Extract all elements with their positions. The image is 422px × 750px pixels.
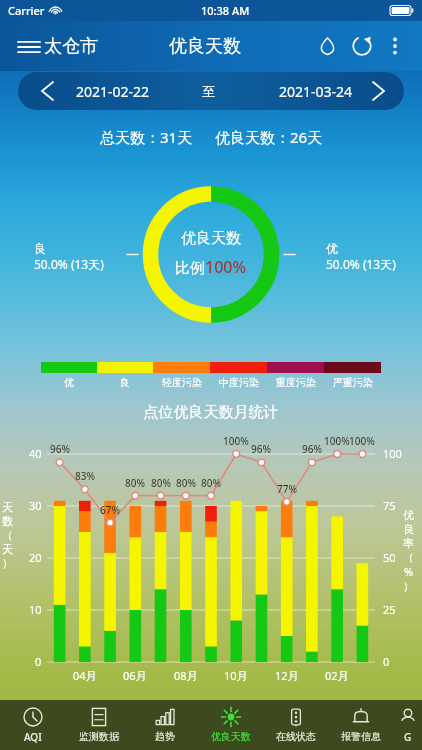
button[interactable]: 2021-03-24 <box>225 82 352 101</box>
staticText: 优良天数 <box>181 229 241 248</box>
staticText: 天 <box>2 542 13 556</box>
staticText: 0 <box>383 654 390 669</box>
staticText: 50 <box>383 550 396 565</box>
staticText: 0 <box>35 654 42 669</box>
staticText: 优良天数 <box>169 35 241 58</box>
staticText: ） <box>403 579 414 593</box>
staticText: （ <box>2 528 13 542</box>
staticText: 优 <box>64 376 74 389</box>
staticText: 80% <box>201 476 221 490</box>
staticText: 报警信息 <box>341 730 381 743</box>
button[interactable]: Next range <box>352 72 404 110</box>
staticText: 80% <box>151 476 171 490</box>
staticText: 优良天数：26天 <box>215 127 323 147</box>
button[interactable]: 在线状态 <box>263 700 328 750</box>
staticText: 总天数：31天 <box>100 127 193 147</box>
button[interactable]: Refresh <box>344 28 380 64</box>
staticText: 重度污染 <box>276 376 316 389</box>
staticText: 12月 <box>275 668 299 683</box>
staticText: 50.0% (13天) <box>326 256 396 272</box>
staticText: 96% <box>50 442 70 456</box>
staticText: 100 <box>383 446 402 461</box>
staticText: 10月 <box>224 668 248 683</box>
staticText: 监测数据 <box>79 730 119 743</box>
staticText: 在线状态 <box>276 730 316 743</box>
staticText: 77% <box>277 482 297 496</box>
staticText: 100% <box>223 434 249 448</box>
staticText: 96% <box>302 442 322 456</box>
staticText: 20 <box>29 550 42 565</box>
staticText: 优良天数 <box>211 730 251 743</box>
button[interactable]: G <box>393 700 422 750</box>
staticText: 10 <box>29 602 42 617</box>
button[interactable]: Previous range <box>18 72 76 110</box>
staticText: 75 <box>383 498 396 513</box>
staticText: Carrier <box>8 3 45 18</box>
staticText: 25 <box>383 602 396 617</box>
staticText: 良 <box>34 241 46 256</box>
staticText: 天 <box>2 500 13 514</box>
staticText: 10:38 AM <box>201 3 250 18</box>
staticText: 中度污染 <box>219 376 259 389</box>
button[interactable]: 报警信息 <box>328 700 393 750</box>
staticText: 严重污染 <box>333 376 373 389</box>
staticText: 良 <box>120 376 130 389</box>
staticText: AQI <box>24 730 42 744</box>
button[interactable]: AQI <box>0 700 66 750</box>
staticText: 06月 <box>123 668 147 683</box>
staticText: 优 <box>326 241 338 256</box>
staticText: 83% <box>75 469 95 483</box>
staticText: 04月 <box>73 668 97 683</box>
staticText: 太仓市 <box>44 35 98 58</box>
staticText: 轻度污染 <box>162 376 202 389</box>
button[interactable]: 太仓市 <box>16 29 100 64</box>
staticText: 67% <box>100 503 120 517</box>
staticText: 80% <box>125 476 145 490</box>
staticText: 08月 <box>174 668 198 683</box>
staticText: ） <box>2 556 13 570</box>
staticText: 100% <box>349 434 375 448</box>
button[interactable]: 优良天数 <box>198 700 263 750</box>
staticText: 96% <box>251 442 271 456</box>
staticText: % <box>404 564 414 579</box>
staticText: 点位优良天数月统计 <box>0 403 422 422</box>
staticText: 比例100% <box>175 256 247 278</box>
staticText: 40 <box>29 446 42 461</box>
button[interactable]: 趋势 <box>132 700 198 750</box>
button[interactable]: Water quality <box>310 29 344 63</box>
staticText: 至 <box>202 83 215 99</box>
staticText: 优 <box>403 508 414 522</box>
button[interactable]: More options <box>380 31 410 61</box>
staticText: （ <box>403 550 414 564</box>
staticText: 良 <box>403 522 414 536</box>
staticText: 率 <box>403 536 414 550</box>
button[interactable]: 监测数据 <box>66 700 132 750</box>
staticText: 80% <box>176 476 196 490</box>
staticText: G <box>404 730 412 744</box>
staticText: 数 <box>2 514 13 528</box>
staticText: 02月 <box>325 668 349 683</box>
button[interactable]: 2021-02-22 <box>76 82 202 101</box>
staticText: 趋势 <box>155 730 175 743</box>
staticText: 30 <box>29 498 42 513</box>
staticText: 50.0% (13天) <box>34 256 104 272</box>
staticText: 100% <box>324 434 350 448</box>
